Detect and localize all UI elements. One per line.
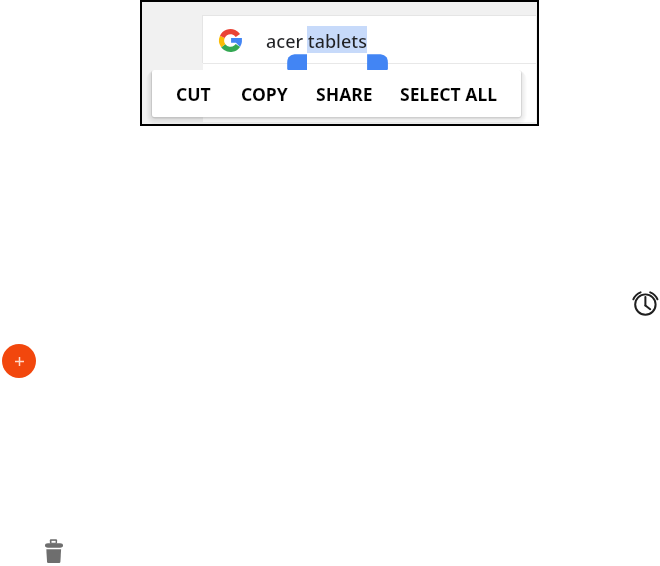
staticText: SELECT ALL [400,82,498,106]
button[interactable]: SHARE [298,70,390,117]
button[interactable]: CUT [157,70,230,117]
button[interactable]: Search field: acer tablets [203,16,536,63]
button[interactable]: Delete [45,539,63,563]
button[interactable]: SELECT ALL [394,70,504,117]
button[interactable]: Alarm [632,291,659,318]
button[interactable]: Add [2,344,36,378]
staticText: SHARE [316,82,373,106]
staticText: acer tablets [266,29,367,54]
button[interactable]: COPY [221,70,307,117]
staticText: COPY [241,82,288,106]
staticText: CUT [176,82,211,106]
